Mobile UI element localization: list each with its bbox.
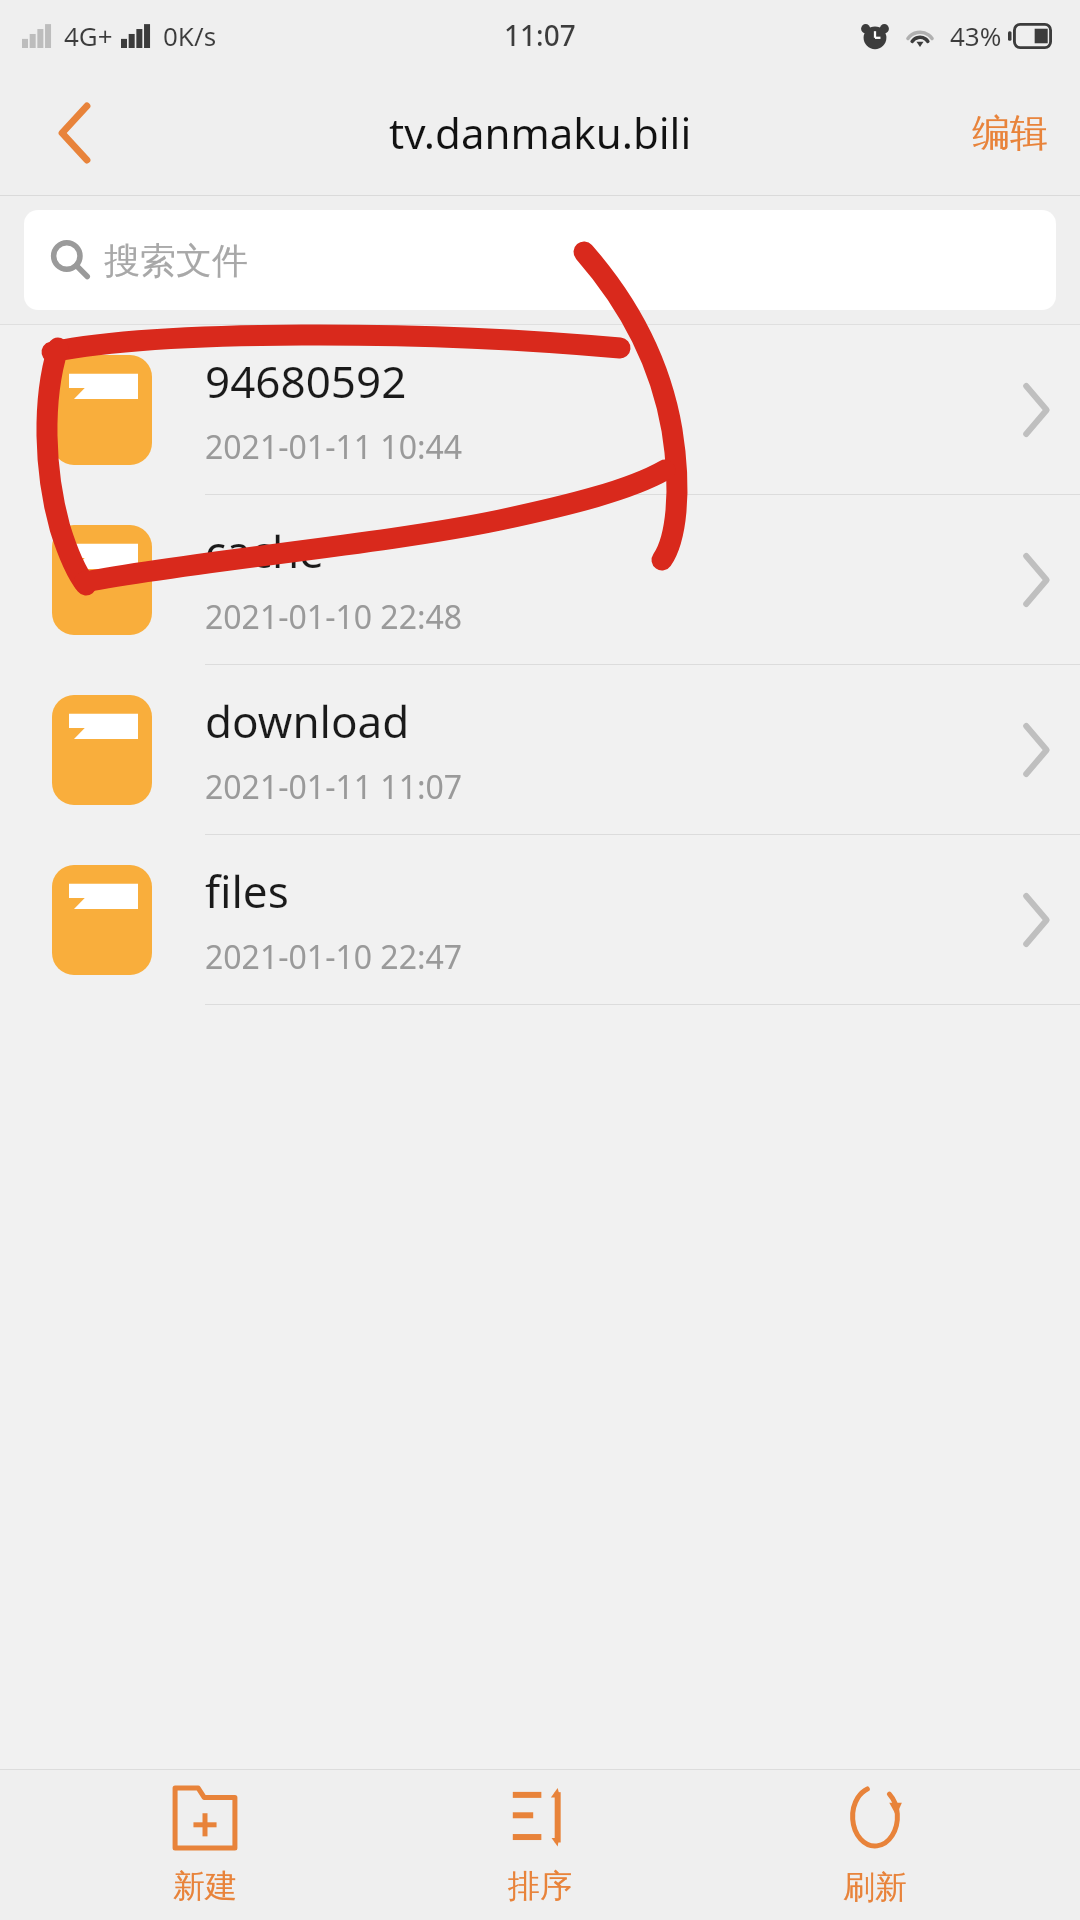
button[interactable]: 刷新 xyxy=(745,1770,1005,1920)
staticText: 11:07 xyxy=(504,16,576,54)
button[interactable]: Back xyxy=(20,78,130,188)
button[interactable]: 94680592 xyxy=(0,325,1080,495)
button[interactable]: 排序 xyxy=(410,1770,670,1920)
staticText: 43% xyxy=(950,18,1002,53)
staticText: download xyxy=(205,691,410,751)
staticText: 2021-01-11 11:07 xyxy=(205,765,463,809)
staticText: 搜索文件 xyxy=(104,238,248,283)
staticText: 刷新 xyxy=(843,1867,907,1907)
staticText: 94680592 xyxy=(205,351,407,411)
staticText: cache xyxy=(205,521,324,581)
button[interactable]: 编辑 xyxy=(958,97,1062,169)
staticText: tv.danmaku.bili xyxy=(389,104,692,161)
staticText: 4G+ xyxy=(64,18,113,53)
staticText: 编辑 xyxy=(972,109,1048,157)
button[interactable]: 搜索文件 xyxy=(24,210,1056,310)
staticText: 排序 xyxy=(508,1866,572,1906)
button[interactable]: cache xyxy=(0,495,1080,665)
staticText: 2021-01-11 10:44 xyxy=(205,425,463,469)
staticText: 2021-01-10 22:47 xyxy=(205,935,463,979)
staticText: files xyxy=(205,861,289,921)
staticText: 2021-01-10 22:48 xyxy=(205,595,463,639)
button[interactable]: download xyxy=(0,665,1080,835)
button[interactable]: 新建 xyxy=(75,1770,335,1920)
button[interactable]: files xyxy=(0,835,1080,1005)
staticText: 0K/s xyxy=(163,18,217,53)
staticText: 新建 xyxy=(173,1866,237,1906)
